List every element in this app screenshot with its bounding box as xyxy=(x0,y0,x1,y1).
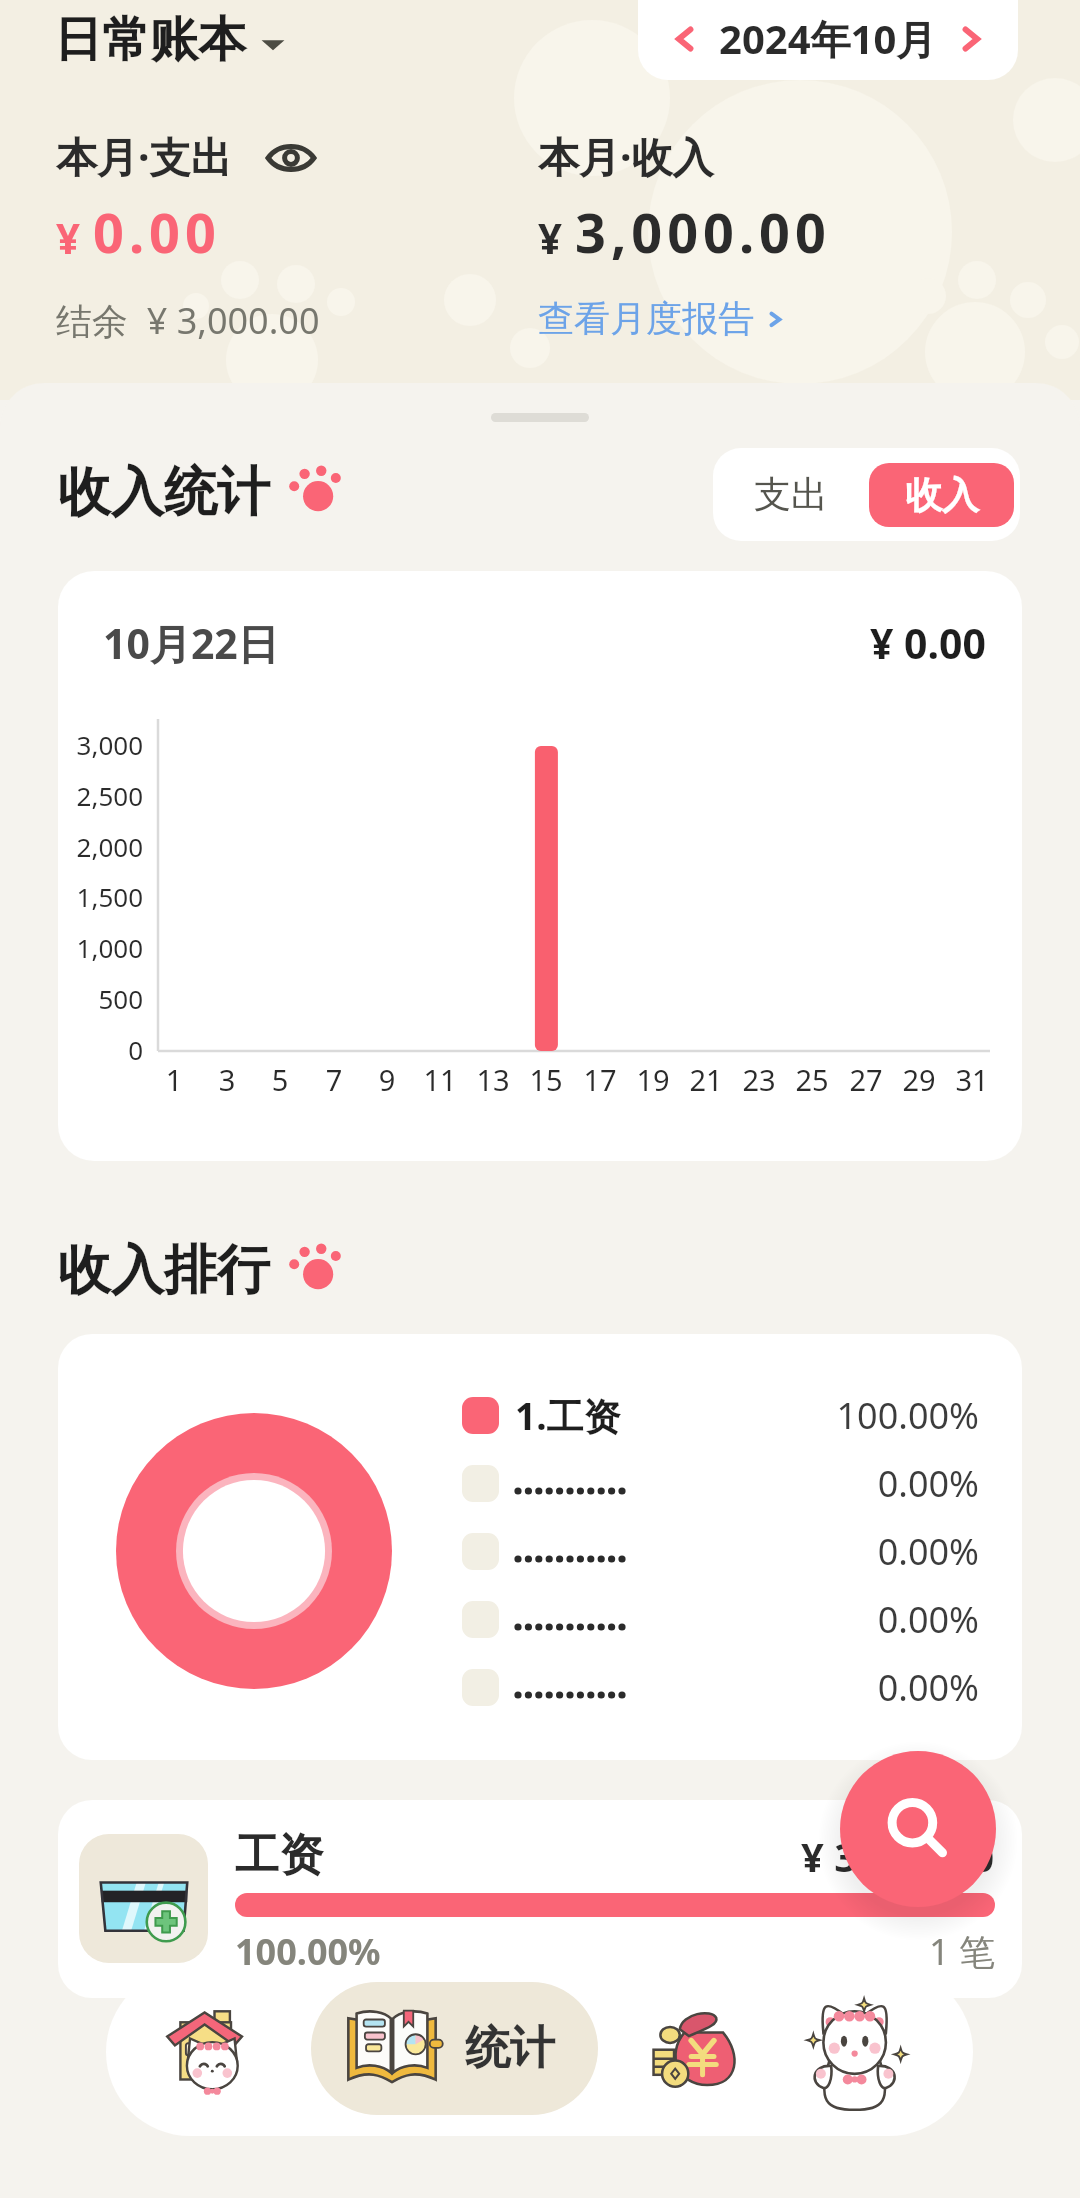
staticText: 2,000 xyxy=(58,829,143,864)
staticText: 0.00% xyxy=(626,1663,979,1712)
staticText: 0 xyxy=(58,1032,143,1067)
staticText: 0.00% xyxy=(626,1527,979,1576)
staticText: 29 xyxy=(895,1060,943,1099)
staticText: 100.00% xyxy=(622,1391,979,1440)
staticText: 1,000 xyxy=(58,930,143,965)
staticText: 支出 xyxy=(754,471,828,518)
staticText: 5 xyxy=(256,1060,304,1099)
staticText: 9 xyxy=(363,1060,411,1099)
staticText: ¥ xyxy=(56,209,81,266)
staticText: 21 xyxy=(682,1060,730,1099)
staticText: 收入统计 xyxy=(58,459,270,526)
staticText: 0.00 xyxy=(93,195,221,269)
button[interactable]: Search xyxy=(840,1751,996,1907)
button[interactable]: Previous month xyxy=(668,22,702,56)
staticText: 1 xyxy=(150,1060,198,1099)
staticText: 0.00% xyxy=(626,1459,979,1508)
staticText: 3,000 xyxy=(58,727,143,762)
button[interactable]: Assets xyxy=(618,1968,778,2136)
staticText: 100.00% xyxy=(235,1927,381,1976)
button[interactable]: Previous month xyxy=(638,0,1018,80)
staticText: 31 xyxy=(948,1060,996,1099)
button[interactable]: 日常账本 xyxy=(54,10,286,70)
staticText: 工资 xyxy=(235,1828,323,1883)
staticText: 收入 xyxy=(905,472,979,519)
staticText: 结余 ¥ 3,000.00 xyxy=(56,296,320,345)
staticText: 3,000.00 xyxy=(575,195,831,269)
button[interactable]: 支出 xyxy=(713,448,869,541)
staticText: 3 xyxy=(203,1060,251,1099)
button[interactable]: Next month xyxy=(954,22,988,56)
staticText: 10月22日 xyxy=(103,615,279,671)
button[interactable]: Home xyxy=(106,1968,311,2136)
staticText: ¥ xyxy=(538,209,563,266)
staticText: 15 xyxy=(522,1060,570,1099)
staticText: 0.00% xyxy=(626,1595,979,1644)
staticText: 500 xyxy=(58,981,143,1016)
staticText: 23 xyxy=(735,1060,783,1099)
staticText: 统计 xyxy=(465,2020,555,2077)
staticText: 本月·收入 xyxy=(538,128,714,184)
staticText: 17 xyxy=(576,1060,624,1099)
staticText: 25 xyxy=(788,1060,836,1099)
staticText: 11 xyxy=(416,1060,464,1099)
staticText: 19 xyxy=(629,1060,677,1099)
staticText: 1 笔 xyxy=(929,1927,995,1976)
button[interactable]: 收入 xyxy=(869,463,1014,527)
staticText: 2024年10月 xyxy=(719,11,937,66)
staticText: 1.工资 xyxy=(515,1390,621,1441)
staticText: 2,500 xyxy=(58,778,143,813)
button[interactable]: 查看月度报告 xyxy=(538,296,786,341)
other: Toggle visibility xyxy=(266,142,316,174)
staticText: 13 xyxy=(469,1060,517,1099)
staticText: 本月·支出 xyxy=(56,128,232,184)
button[interactable]: 工资 xyxy=(58,1800,1022,1998)
button[interactable]: Profile xyxy=(777,1968,937,2136)
staticText: 收入排行 xyxy=(58,1237,270,1304)
staticText: 日常账本 xyxy=(54,10,246,70)
staticText: 查看月度报告 xyxy=(538,296,754,341)
staticText: 1,500 xyxy=(58,879,143,914)
staticText: ¥ 0.00 xyxy=(870,615,986,671)
button[interactable]: 统计 xyxy=(311,1982,598,2115)
staticText: ¥ 3,000.00 xyxy=(801,1829,995,1883)
staticText: 7 xyxy=(310,1060,358,1099)
staticText: 27 xyxy=(842,1060,890,1099)
